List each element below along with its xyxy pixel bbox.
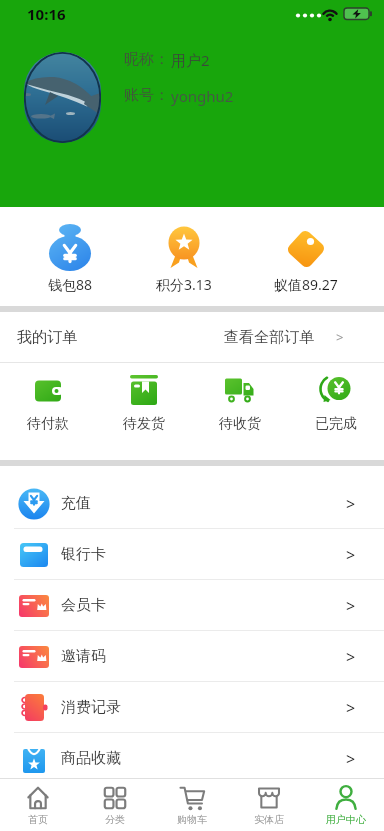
staticText: >	[346, 544, 356, 566]
button[interactable]: 待发货	[123, 363, 165, 433]
staticText: 银行卡	[61, 545, 106, 564]
staticText: >	[346, 748, 356, 770]
staticText: 10:16	[27, 4, 66, 24]
staticText: 充值	[61, 494, 91, 513]
staticText: 待付款	[27, 415, 69, 433]
staticText: yonghu2	[171, 86, 234, 106]
button[interactable]: 邀请码	[0, 631, 384, 682]
staticText: 用户2	[171, 50, 210, 70]
staticText: 积分3.13	[156, 275, 212, 294]
staticText: 会员卡	[61, 596, 106, 615]
staticText: 昵称：	[124, 50, 169, 69]
button[interactable]: 待收货	[219, 363, 261, 433]
staticText: 查看全部订单	[224, 328, 314, 347]
button[interactable]: 蚁值89.27	[274, 207, 338, 294]
staticText: >	[346, 493, 356, 515]
button[interactable]: 实体店	[230, 779, 307, 826]
staticText: 邀请码	[61, 647, 106, 666]
staticText: >	[346, 646, 356, 668]
staticText: 我的订单	[17, 328, 77, 347]
staticText: 分类	[105, 813, 125, 826]
button[interactable]	[24, 52, 101, 143]
staticText: 用户中心	[326, 813, 366, 826]
button[interactable]: 充值	[0, 478, 384, 529]
staticText: 首页	[28, 813, 48, 826]
staticText: 商品收藏	[61, 749, 121, 768]
button[interactable]: 消费记录	[0, 682, 384, 733]
staticText: 购物车	[177, 813, 207, 826]
button[interactable]: 首页	[0, 779, 76, 826]
button[interactable]: 已完成	[315, 363, 357, 433]
staticText: >	[336, 328, 344, 346]
staticText: 账号：	[124, 86, 169, 105]
button[interactable]: 会员卡	[0, 580, 384, 631]
button[interactable]: 积分3.13	[156, 207, 212, 294]
button[interactable]: 钱包88	[46, 207, 94, 294]
button[interactable]: 待付款	[27, 363, 69, 433]
staticText: >	[346, 595, 356, 617]
button[interactable]: 用户中心	[307, 779, 384, 826]
staticText: >	[346, 697, 356, 719]
button[interactable]: 银行卡	[0, 529, 384, 580]
staticText: 待收货	[219, 415, 261, 433]
staticText: 已完成	[315, 415, 357, 433]
button[interactable]: 商品收藏	[0, 733, 384, 784]
staticText: 蚁值89.27	[274, 275, 338, 294]
staticText: 消费记录	[61, 698, 121, 717]
button[interactable]: 我的订单	[0, 312, 384, 362]
staticText: 钱包88	[48, 275, 93, 294]
staticText: 实体店	[254, 813, 284, 826]
button[interactable]: 分类	[76, 779, 153, 826]
staticText: 待发货	[123, 415, 165, 433]
button[interactable]: 购物车	[153, 779, 230, 826]
